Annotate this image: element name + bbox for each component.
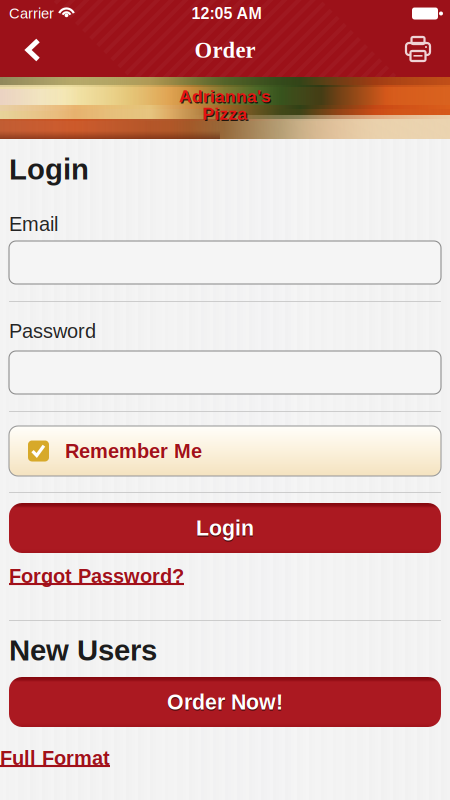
staticText: Login [196, 516, 254, 540]
staticText: Adrianna's [180, 88, 272, 107]
staticText: Order Now! [167, 691, 283, 715]
staticText: Order Now! [167, 690, 283, 714]
button[interactable]: Remember Me [9, 426, 441, 476]
staticText: Pizza [202, 104, 247, 123]
staticText: Password [9, 320, 96, 342]
staticText: Carrier [9, 5, 54, 22]
staticText: Forgot Password? [9, 565, 184, 587]
staticText: 12:05 AM [191, 5, 261, 22]
staticText: Remember Me [65, 440, 202, 462]
button[interactable]: Login [9, 503, 441, 553]
button[interactable]: Back [0, 27, 56, 77]
button[interactable]: Order Now! [9, 677, 441, 727]
staticText: Full Format [0, 747, 110, 769]
button[interactable]: Full Format [0, 745, 450, 771]
staticText: Order [194, 37, 255, 62]
staticText: Login [9, 153, 89, 186]
button[interactable]: Print [394, 27, 450, 77]
staticText: Email [9, 213, 58, 235]
staticText: Adrianna's [179, 87, 271, 106]
staticText: Pizza [204, 105, 249, 125]
staticText: Login [196, 517, 254, 541]
staticText: New Users [9, 634, 157, 667]
button[interactable]: Forgot Password? [0, 563, 450, 589]
